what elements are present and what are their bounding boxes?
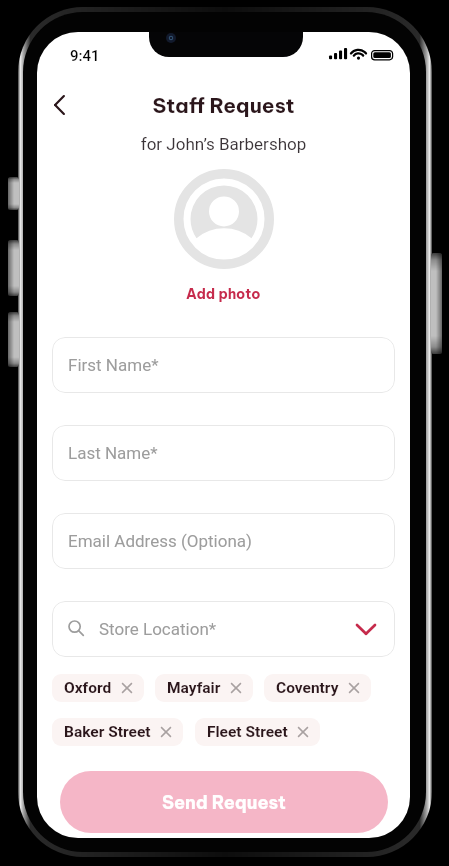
staticText: Add photo xyxy=(186,285,261,303)
button[interactable]: Last Name* xyxy=(52,425,395,481)
button[interactable]: Send Request xyxy=(60,771,388,833)
button[interactable]: Add photo xyxy=(180,283,267,305)
button[interactable]: Store Location* xyxy=(52,601,395,657)
staticText: Oxford xyxy=(64,679,112,697)
button[interactable]: Back xyxy=(41,87,77,123)
staticText: Mayfair xyxy=(167,679,221,697)
staticText: Send Request xyxy=(162,791,286,814)
button[interactable]: Oxford xyxy=(52,674,144,702)
staticText: Staff Request xyxy=(37,92,410,118)
button[interactable]: Fleet Street xyxy=(195,718,320,746)
staticText: Email Address (Optiona) xyxy=(68,531,252,551)
staticText: Store Location* xyxy=(99,619,217,639)
staticText: Fleet Street xyxy=(207,723,288,741)
staticText: First Name* xyxy=(68,355,159,375)
button[interactable]: Baker Street xyxy=(52,718,183,746)
staticText: 9:41 xyxy=(70,47,100,65)
button[interactable]: Open store list xyxy=(351,614,381,644)
button[interactable]: Mayfair xyxy=(155,674,253,702)
staticText: for John’s Barbershop xyxy=(37,134,410,154)
staticText: Last Name* xyxy=(68,443,158,463)
staticText: Baker Street xyxy=(64,723,151,741)
staticText: Coventry xyxy=(276,679,339,697)
button[interactable]: Email Address (Optiona) xyxy=(52,513,395,569)
button[interactable]: First Name* xyxy=(52,337,395,393)
button[interactable]: Coventry xyxy=(264,674,371,702)
